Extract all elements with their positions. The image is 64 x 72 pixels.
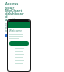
- staticText: Access your MyChart dashboard anytime: [5, 1, 24, 22]
- button[interactable]: [9, 41, 29, 46]
- staticText: Download the app today: [5, 23, 24, 33]
- staticText: Welcome: [9, 29, 22, 33]
- button[interactable]: [5, 34, 12, 37]
